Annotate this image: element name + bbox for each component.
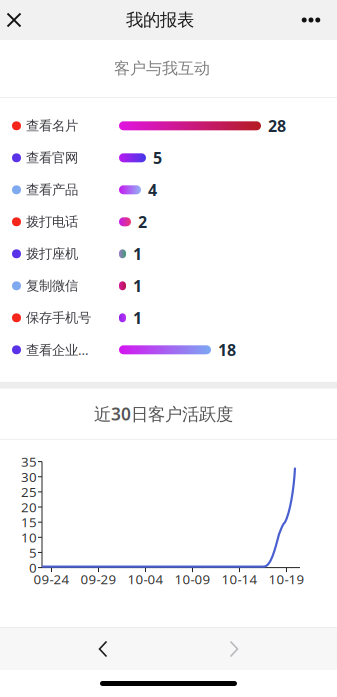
staticText: 5	[29, 544, 37, 561]
staticText: 查看名片	[26, 118, 78, 134]
staticText: 30	[21, 468, 37, 486]
staticText: 2	[138, 211, 147, 232]
button[interactable]: 后退	[75, 628, 131, 670]
staticText: 拨打电话	[26, 214, 78, 230]
button[interactable]: 前进	[206, 628, 262, 670]
staticText: 10	[21, 528, 37, 546]
staticText: 09-29	[80, 570, 116, 588]
staticText: 09-24	[33, 570, 69, 588]
staticText: 10-09	[174, 570, 210, 588]
staticText: 近30日客户活跃度	[94, 402, 233, 425]
staticText: 10-04	[127, 570, 163, 588]
staticText: 4	[148, 179, 157, 200]
staticText: 28	[268, 115, 286, 136]
staticText: 客户与我互动	[114, 59, 210, 78]
staticText: 1	[133, 243, 142, 264]
staticText: 20	[21, 498, 37, 516]
staticText: 1	[133, 307, 142, 328]
staticText: 25	[21, 483, 37, 501]
staticText: 查看产品	[26, 182, 78, 198]
staticText: 10-14	[221, 570, 257, 588]
staticText: 5	[153, 147, 162, 168]
staticText: 查看官网	[26, 150, 78, 166]
staticText: 35	[21, 453, 37, 470]
staticText: 拨打座机	[26, 246, 78, 262]
staticText: 18	[218, 339, 236, 360]
staticText: 10-19	[268, 570, 304, 588]
staticText: 15	[21, 513, 37, 531]
staticText: 1	[133, 275, 142, 296]
staticText: 保存手机号	[26, 310, 91, 326]
staticText: 复制微信	[26, 278, 78, 294]
button[interactable]: 更多	[291, 0, 331, 40]
button[interactable]: 关闭	[0, 0, 32, 40]
staticText: 0	[29, 559, 37, 576]
staticText: 我的报表	[126, 9, 194, 31]
staticText: 查看企业…	[26, 341, 89, 359]
